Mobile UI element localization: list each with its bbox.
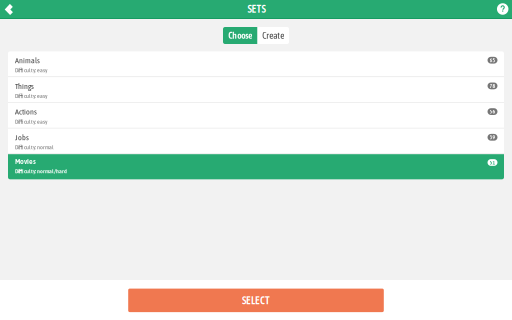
button[interactable]: Help bbox=[494, 0, 512, 18]
staticText: Jobs bbox=[15, 133, 29, 142]
staticText: Difficulty: easy bbox=[15, 67, 47, 73]
staticText: 51 bbox=[489, 159, 495, 166]
button[interactable]: SELECT bbox=[128, 289, 384, 312]
button[interactable]: Back bbox=[0, 0, 18, 18]
button[interactable]: Choose bbox=[223, 27, 257, 44]
staticText: SETS bbox=[247, 3, 265, 15]
staticText: Choose bbox=[228, 30, 252, 41]
staticText: Animals bbox=[15, 56, 40, 65]
button[interactable]: Jobs bbox=[8, 128, 504, 154]
button[interactable]: Create bbox=[257, 27, 289, 44]
staticText: Create bbox=[262, 30, 284, 41]
staticText: Things bbox=[15, 81, 34, 91]
button[interactable]: Actions bbox=[8, 103, 504, 128]
button[interactable]: Animals bbox=[8, 51, 504, 76]
staticText: Difficulty: easy bbox=[15, 118, 47, 125]
staticText: 39 bbox=[489, 134, 495, 140]
staticText: 56 bbox=[489, 108, 495, 115]
staticText: Movies bbox=[15, 157, 36, 166]
staticText: Difficulty: normal/hard bbox=[15, 168, 67, 175]
staticText: Actions bbox=[15, 107, 37, 116]
button[interactable]: Movies bbox=[8, 154, 504, 179]
staticText: SELECT bbox=[242, 294, 270, 306]
button[interactable]: Things bbox=[8, 77, 504, 102]
staticText: Difficulty: normal bbox=[15, 144, 54, 151]
staticText: 78 bbox=[489, 83, 495, 89]
staticText: Difficulty: easy bbox=[15, 92, 47, 99]
staticText: 65 bbox=[489, 57, 495, 63]
